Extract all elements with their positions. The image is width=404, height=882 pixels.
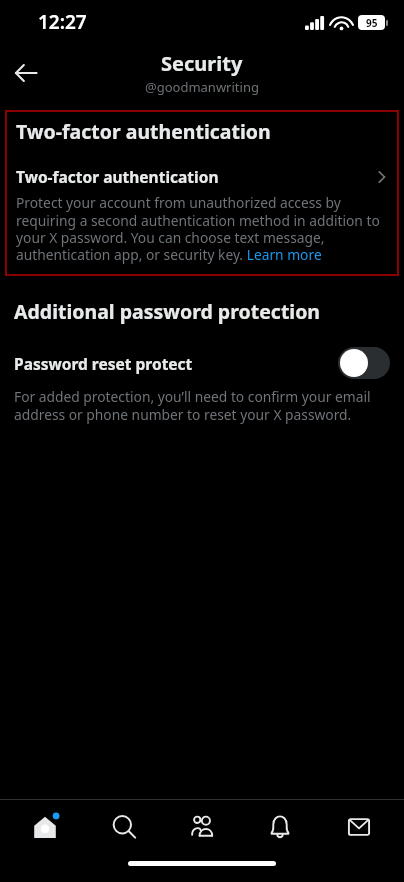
staticText: @goodmanwriting [145, 78, 259, 96]
button[interactable]: Back [4, 51, 48, 95]
staticText: Additional password protection [14, 298, 321, 325]
button[interactable]: Password reset protect [14, 347, 390, 379]
staticText: Two-factor authentication [16, 166, 374, 187]
button[interactable]: Notifications [247, 800, 313, 853]
button[interactable]: Messages [326, 800, 392, 853]
staticText: Two-factor authentication [16, 118, 271, 145]
staticText: Password reset protect [14, 353, 338, 374]
staticText: Protect your account from unauthorized a… [16, 193, 388, 264]
button[interactable]: Home [12, 800, 78, 853]
button[interactable]: Password reset protect toggle [338, 347, 390, 379]
staticText: 95 [366, 16, 378, 30]
staticText: For added protection, you’ll need to con… [14, 387, 390, 424]
button[interactable]: Communities [169, 800, 235, 853]
staticText: Security [161, 50, 243, 77]
staticText: 12:27 [38, 9, 87, 35]
button[interactable]: Search [91, 800, 157, 853]
button[interactable]: Two-factor authentication [16, 166, 388, 187]
